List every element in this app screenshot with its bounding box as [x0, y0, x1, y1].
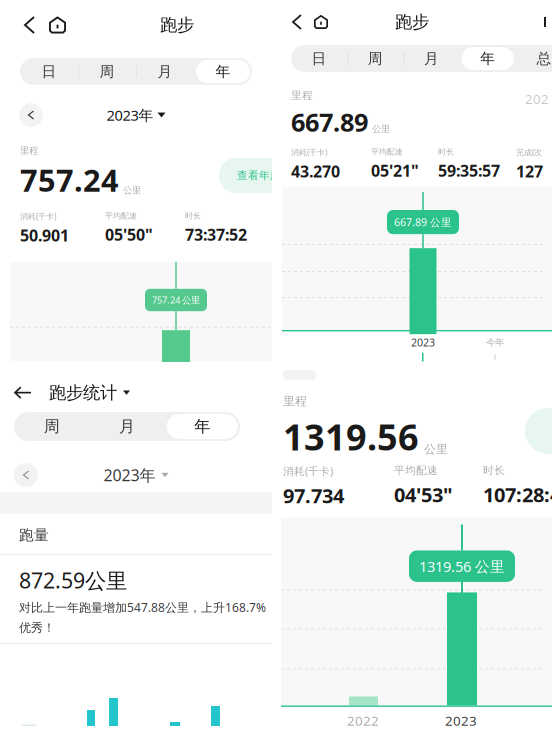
button[interactable]: 周 — [14, 412, 89, 441]
staticText: 667.89 — [291, 105, 368, 139]
staticText: 消耗(千卡) — [20, 211, 56, 222]
staticText: 完成(次 — [516, 147, 542, 158]
staticText: 127 — [516, 161, 543, 182]
staticText: 2023 — [411, 335, 435, 350]
staticText: 里程 — [20, 145, 38, 156]
staticText: 43.270 — [291, 161, 340, 182]
staticText: 今年 — [486, 337, 504, 348]
staticText: 跑步 — [160, 14, 194, 36]
button[interactable]: 总 — [516, 45, 552, 72]
staticText: 年 — [215, 62, 230, 80]
staticText: 年 — [480, 49, 495, 67]
staticText: 周 — [368, 49, 383, 67]
button[interactable]: 月 — [89, 412, 165, 441]
staticText: 公里 — [424, 442, 448, 456]
button[interactable]: 年 — [460, 45, 516, 72]
staticText: 97.734 — [283, 482, 344, 509]
staticText: 跑步 — [395, 11, 429, 33]
button[interactable]: Home — [45, 11, 70, 38]
button[interactable]: Back — [11, 381, 34, 404]
button[interactable]: 2023年 — [106, 105, 165, 125]
staticText: 73:37:52 — [185, 224, 247, 245]
button[interactable]: Previous year — [19, 103, 43, 127]
staticText: 日 — [41, 62, 56, 80]
staticText: 月 — [157, 62, 172, 80]
staticText: 2022 — [347, 712, 379, 729]
staticText: 日 — [312, 49, 327, 67]
staticText: 平均配速 — [394, 464, 438, 477]
staticText: 周 — [99, 62, 114, 80]
staticText: 跑步统计 — [49, 382, 117, 403]
staticText: 总 — [536, 49, 551, 67]
button[interactable]: 年 — [194, 58, 252, 85]
button[interactable]: Back — [289, 10, 305, 34]
staticText: 消耗(千卡) — [283, 464, 333, 478]
staticText: 平均配速 — [371, 147, 403, 157]
staticText: 757.24 — [20, 159, 119, 200]
button[interactable]: 2023年 — [103, 464, 168, 486]
staticText: 667.89 公里 — [394, 215, 452, 229]
staticText: 50.901 — [20, 225, 69, 246]
staticText: 1319.56 公里 — [419, 556, 505, 576]
button[interactable]: 月 — [136, 58, 194, 85]
staticText: 时长 — [185, 211, 201, 221]
staticText: 平均配速 — [105, 211, 137, 221]
staticText: 月 — [119, 417, 135, 436]
staticText: 里程 — [291, 89, 313, 102]
button[interactable]: 周 — [78, 58, 136, 85]
staticText: 05'21" — [371, 160, 419, 181]
button[interactable]: 年 — [165, 412, 240, 441]
button[interactable]: 跑步统计 — [34, 377, 130, 408]
button[interactable]: Previous year — [14, 463, 38, 487]
button[interactable]: Back — [20, 12, 39, 38]
button[interactable]: 查看年度 — [219, 158, 272, 193]
button[interactable]: 月 — [403, 45, 460, 72]
staticText: 107:28:42 — [483, 481, 552, 508]
staticText: 872.59公里 — [19, 566, 127, 594]
staticText: 年 — [194, 417, 210, 436]
staticText: 202 — [525, 90, 549, 108]
staticText: 757.24 公里 — [152, 294, 200, 306]
staticText: 优秀！ — [19, 620, 55, 635]
staticText: 2023 — [445, 712, 477, 729]
staticText: 2023年 — [106, 105, 153, 125]
staticText: 1319.56 — [283, 413, 419, 460]
staticText: 公里 — [123, 185, 141, 196]
staticText: 59:35:57 — [438, 160, 500, 181]
staticText: 跑量 — [19, 526, 49, 544]
staticText: 周 — [44, 417, 60, 436]
button[interactable]: 日 — [20, 58, 78, 85]
staticText: 对比上一年跑量增加547.88公里，上升168.7% — [19, 599, 266, 615]
staticText: 里程 — [283, 394, 307, 409]
button[interactable]: 日 — [291, 45, 347, 72]
button[interactable]: 周 — [347, 45, 403, 72]
staticText: 05'50" — [105, 224, 153, 245]
staticText: 月 — [424, 49, 439, 67]
staticText: 时长 — [438, 147, 454, 157]
staticText: 2023年 — [103, 464, 155, 486]
button[interactable]: Home — [310, 10, 332, 34]
staticText: 查看年度 — [237, 169, 281, 182]
staticText: 04'53" — [394, 481, 453, 508]
staticText: 时长 — [483, 464, 505, 477]
staticText: 公里 — [372, 123, 390, 135]
staticText: 消耗(千卡) — [291, 147, 327, 158]
